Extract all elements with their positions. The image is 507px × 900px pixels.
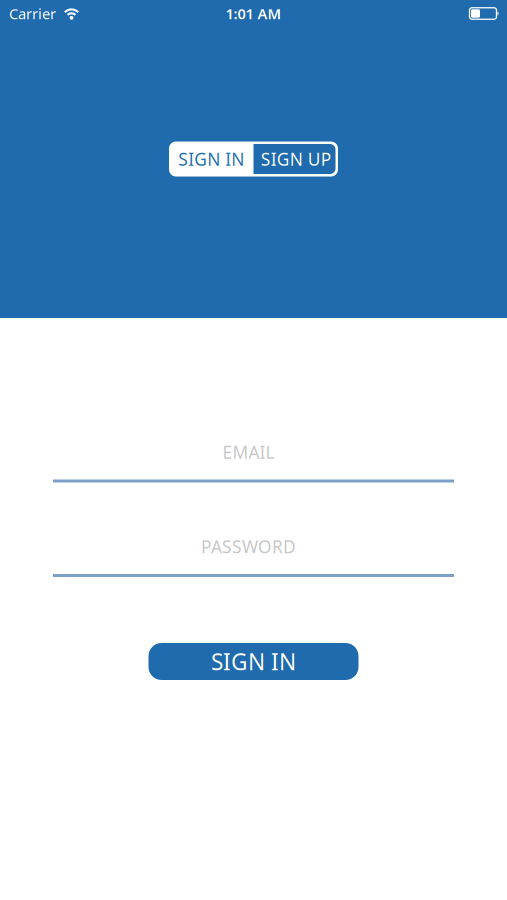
staticText: Carrier bbox=[9, 4, 56, 23]
staticText: 1:01 AM bbox=[225, 4, 281, 23]
staticText: EMAIL bbox=[222, 440, 274, 463]
button[interactable]: PASSWORD bbox=[53, 536, 454, 577]
staticText: SIGN UP bbox=[261, 147, 331, 170]
staticText: SIGN IN bbox=[211, 646, 296, 676]
staticText: SIGN IN bbox=[178, 147, 244, 170]
button[interactable]: SIGN UP bbox=[253, 141, 338, 176]
staticText: PASSWORD bbox=[201, 535, 296, 558]
button[interactable]: SIGN IN bbox=[169, 141, 253, 176]
button[interactable]: SIGN IN bbox=[148, 643, 358, 680]
button[interactable]: EMAIL bbox=[53, 442, 454, 482]
